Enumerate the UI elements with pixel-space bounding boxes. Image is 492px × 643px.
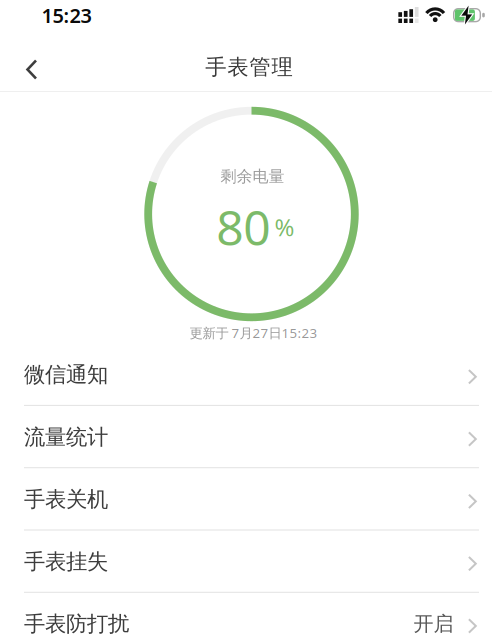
staticText: 剩余电量 [220,167,284,186]
staticText: 更新于 7月27日15:23 [189,324,317,342]
staticText: 15:23 [41,2,91,29]
button[interactable]: Back [9,47,53,91]
button[interactable]: 流量统计 [0,406,492,468]
button[interactable]: 微信通知 [0,344,492,406]
staticText: 手表管理 [205,54,292,80]
button[interactable]: 手表防打扰 [0,593,492,643]
staticText: 流量统计 [24,424,108,450]
staticText: 手表关机 [24,486,108,512]
staticText: 手表挂失 [24,548,108,575]
staticText: % [274,211,294,243]
staticText: 开启 [413,612,453,636]
button[interactable]: 手表关机 [0,468,492,530]
staticText: 微信通知 [24,362,108,388]
staticText: 80 [216,195,270,259]
button[interactable]: 手表挂失 [0,530,492,593]
staticText: 手表防打扰 [24,611,129,637]
